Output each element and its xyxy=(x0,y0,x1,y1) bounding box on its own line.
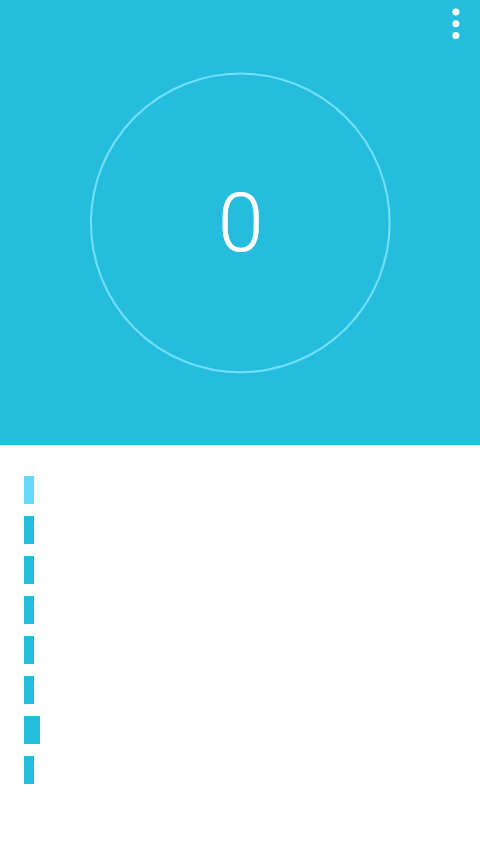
button[interactable]: More options xyxy=(424,0,472,48)
staticText: 0 xyxy=(218,175,264,271)
button[interactable]: Increment counter xyxy=(91,73,390,372)
